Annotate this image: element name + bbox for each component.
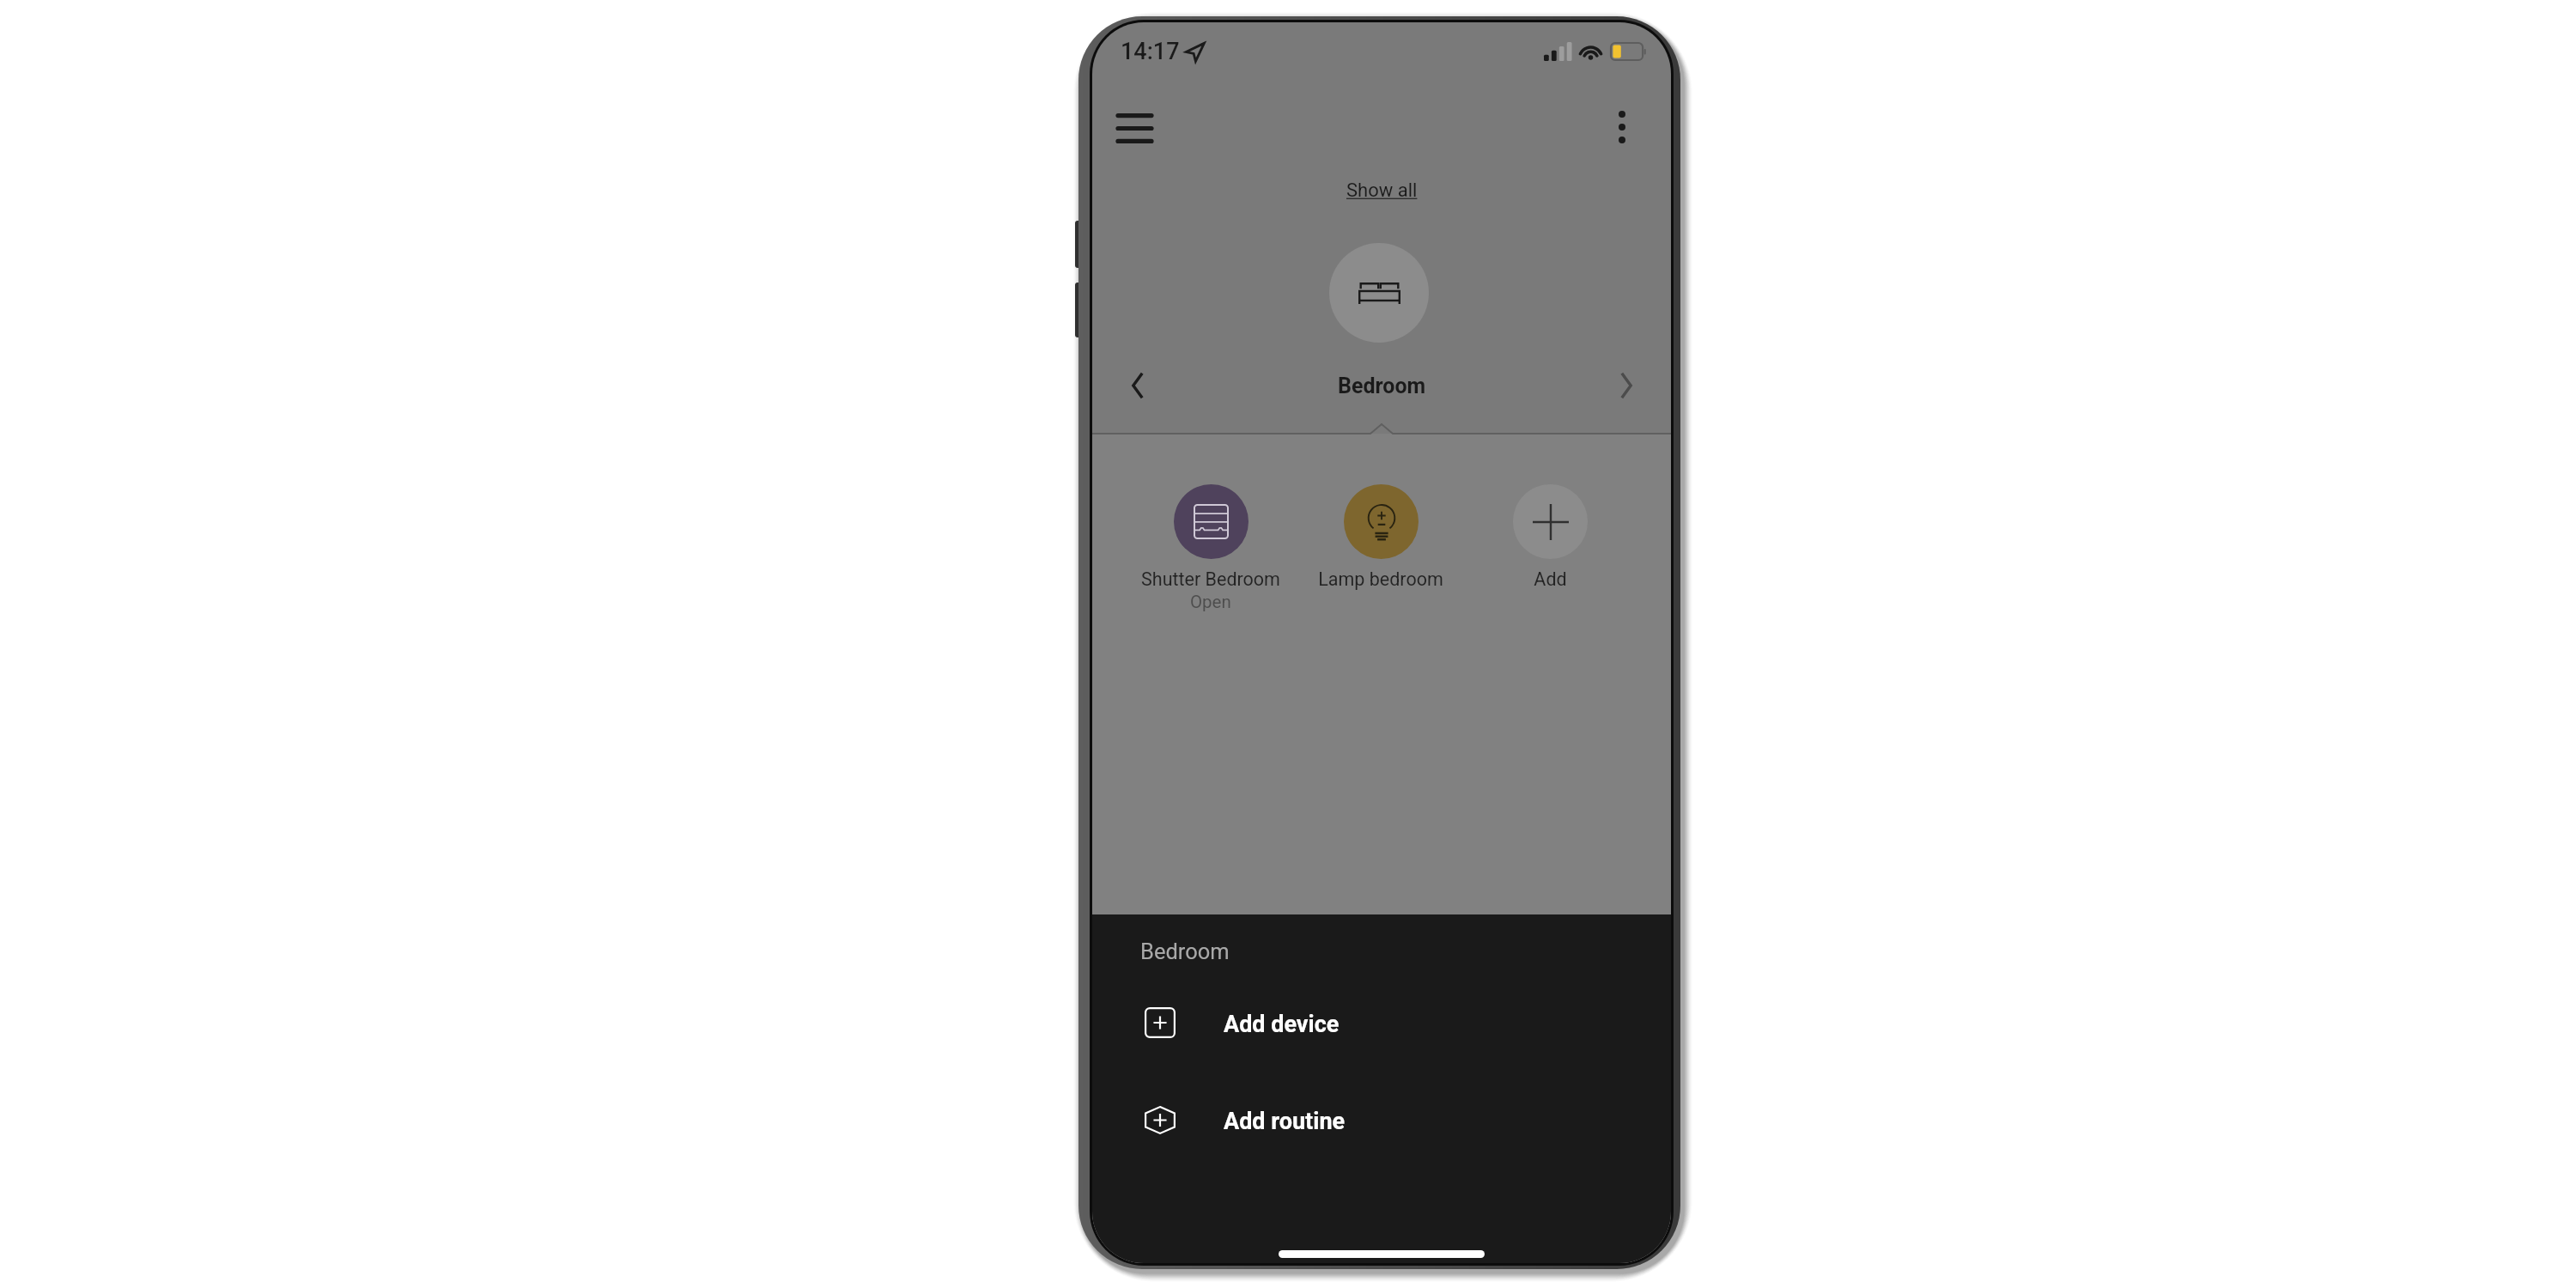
button[interactable]: Next room: [1600, 361, 1653, 410]
button[interactable]: Bedroom: [1329, 243, 1429, 343]
button[interactable]: Lamp bedroom: [1282, 484, 1479, 613]
staticText: Lamp bedroom: [1318, 568, 1443, 590]
button[interactable]: Menu: [1099, 92, 1170, 164]
staticText: Add: [1534, 568, 1567, 590]
button[interactable]: Add: [1451, 484, 1649, 613]
button[interactable]: Add device: [1092, 1001, 1671, 1044]
staticText: Shutter Bedroom: [1141, 568, 1280, 590]
button[interactable]: Shutter Bedroom: [1112, 484, 1309, 635]
staticText: Bedroom: [1338, 374, 1426, 398]
staticText: Open: [1190, 592, 1231, 612]
button[interactable]: Show all: [1092, 173, 1671, 208]
staticText: Add device: [1224, 1011, 1340, 1038]
staticText: Bedroom: [1140, 939, 1230, 964]
button[interactable]: Add routine: [1092, 1098, 1671, 1141]
staticText: Add routine: [1224, 1108, 1346, 1135]
staticText: 14:17: [1121, 38, 1180, 65]
button[interactable]: More options: [1586, 91, 1657, 163]
staticText: Show all: [1346, 179, 1418, 202]
button[interactable]: Previous room: [1111, 361, 1164, 410]
